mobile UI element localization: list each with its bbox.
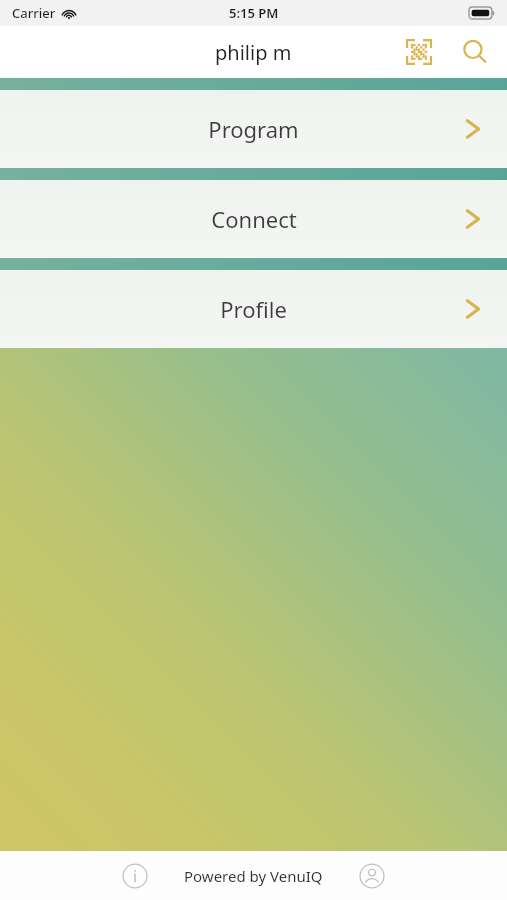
staticText: Carrier: [12, 4, 56, 22]
staticText: Program: [208, 114, 299, 144]
staticText: Powered by VenuIQ: [184, 866, 323, 886]
button[interactable]: Search: [453, 30, 497, 74]
button[interactable]: Scan QR code: [397, 30, 441, 74]
button[interactable]: Profile: [352, 856, 392, 896]
button[interactable]: Connect: [0, 180, 507, 258]
staticText: Connect: [211, 204, 297, 234]
button[interactable]: Program: [0, 90, 507, 168]
staticText: philip m: [215, 39, 292, 66]
staticText: Profile: [220, 294, 287, 324]
button[interactable]: Profile: [0, 270, 507, 348]
staticText: 5:15 PM: [229, 4, 279, 22]
button[interactable]: Information: [115, 856, 155, 896]
